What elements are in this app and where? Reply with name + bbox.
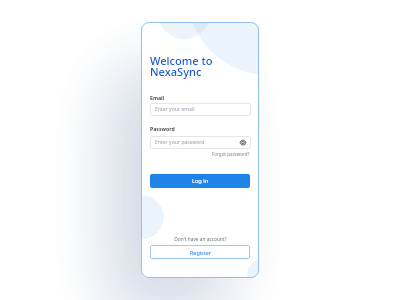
staticText: Don't have an account? [174,236,227,243]
button[interactable]: Show password [238,138,247,147]
button[interactable]: Log in [150,174,250,188]
staticText: Register [190,249,211,256]
staticText: Email [150,94,165,101]
staticText: Enter your password [155,139,205,146]
staticText: Welcome to NexaSync [150,53,213,79]
button[interactable]: Enter your password [150,136,251,149]
staticText: Password [150,125,175,132]
staticText: Forgot password? [212,151,250,157]
button[interactable]: Enter your email [150,103,251,116]
staticText: Enter your email [155,106,195,113]
button[interactable]: Forgot password? [190,149,250,158]
staticText: Log in [192,177,209,185]
button[interactable]: Register [150,245,250,259]
